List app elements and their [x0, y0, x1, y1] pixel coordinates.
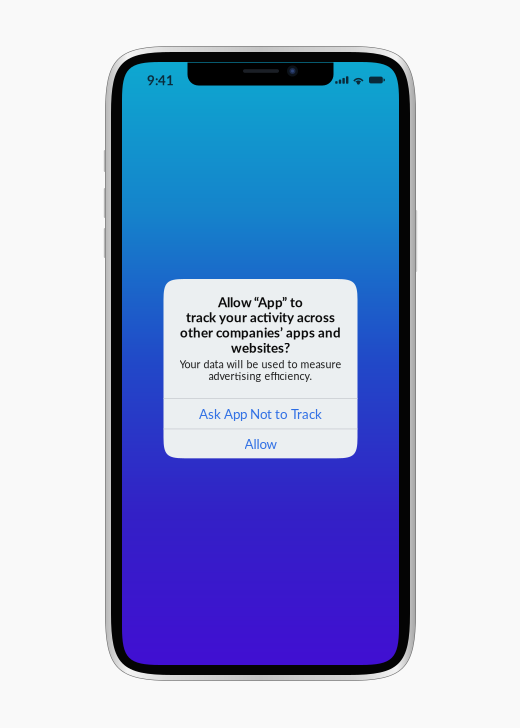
staticText: advertising efficiency.	[208, 369, 312, 382]
staticText: Allow “App” to	[218, 294, 303, 310]
staticText: websites?	[231, 340, 290, 356]
staticText: Your data will be used to measure	[179, 358, 341, 370]
button[interactable]: Ask App Not to Track	[163, 399, 357, 428]
staticText: other companies’ apps and	[180, 324, 341, 340]
staticText: Allow	[244, 436, 276, 452]
staticText: Ask App Not to Track	[199, 406, 322, 422]
staticText: track your activity across	[186, 309, 335, 325]
button[interactable]: Allow	[163, 429, 357, 458]
staticText: 9:41	[147, 72, 174, 88]
